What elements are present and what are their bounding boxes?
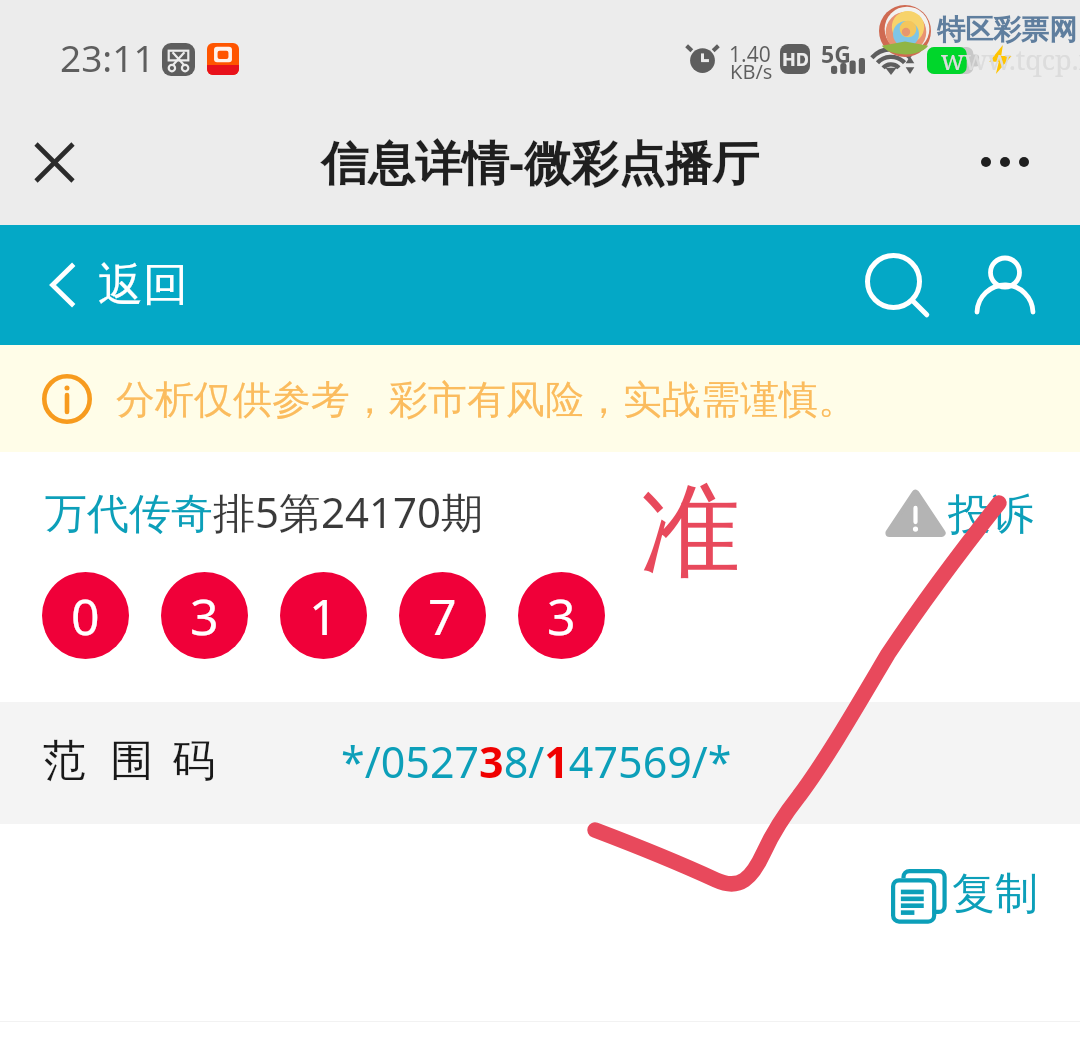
button[interactable]: More options xyxy=(941,108,1069,216)
button[interactable]: Account xyxy=(957,225,1053,345)
button[interactable]: 1 xyxy=(280,572,367,659)
staticText: 3 xyxy=(547,582,576,650)
staticText: 万代传奇排5第24170期 xyxy=(45,483,484,540)
staticText: 1 xyxy=(309,582,338,650)
button[interactable]: Search xyxy=(848,225,944,345)
staticText: 复制 xyxy=(952,867,1038,921)
staticText: HD xyxy=(782,47,809,72)
button[interactable]: 3 xyxy=(518,572,605,659)
button[interactable]: 投诉 xyxy=(887,488,1034,542)
staticText: 返回 xyxy=(98,257,188,314)
staticText: 范 xyxy=(43,734,86,788)
staticText: 0 xyxy=(71,582,100,650)
staticText: 23:11 xyxy=(60,32,155,82)
staticText: 7 xyxy=(428,582,457,650)
button[interactable]: 0 xyxy=(42,572,129,659)
staticText: */052738/147569/* xyxy=(341,732,732,791)
button[interactable]: 复制 xyxy=(891,867,1080,921)
staticText: 1.40 xyxy=(729,40,771,69)
button[interactable]: Close xyxy=(0,108,108,216)
button[interactable]: 3 xyxy=(161,572,248,659)
staticText: KB/s xyxy=(730,58,773,85)
staticText: 投诉 xyxy=(948,488,1034,542)
staticText: 分析仅供参考，彩市有风险，实战需谨慎。 xyxy=(116,375,857,424)
staticText: 5G xyxy=(821,38,851,69)
staticText: 特区彩票网 xyxy=(937,12,1077,47)
staticText: 3 xyxy=(190,582,219,650)
staticText: 码 xyxy=(172,734,215,788)
button[interactable]: 7 xyxy=(399,572,486,659)
staticText: 准 xyxy=(640,469,741,596)
staticText: www.tqcp.net xyxy=(941,41,1080,78)
button[interactable]: 返回 xyxy=(0,225,208,345)
staticText: 信息详情-微彩点播厅 xyxy=(321,130,760,194)
staticText: 围 xyxy=(110,734,153,788)
